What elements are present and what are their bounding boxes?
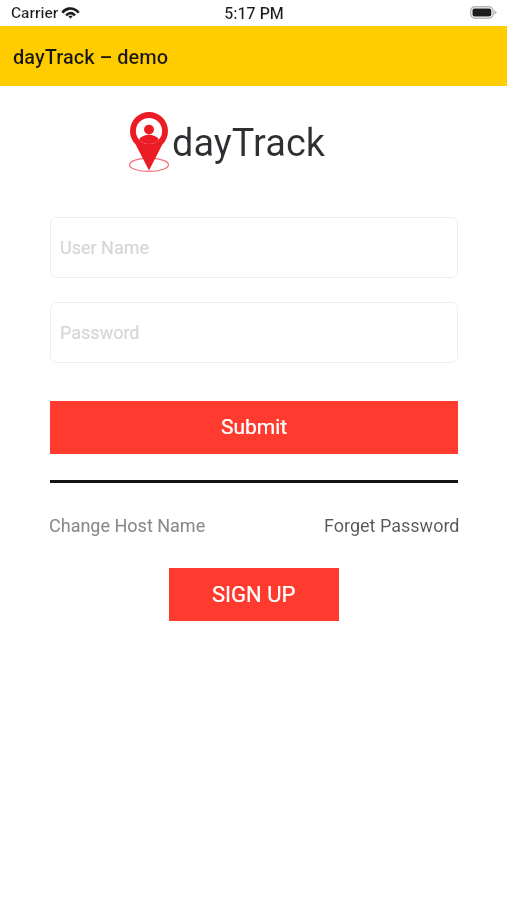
button[interactable]: Forget Password	[324, 515, 460, 536]
staticText: dayTrack	[172, 121, 326, 166]
button[interactable]: Password	[50, 302, 458, 363]
staticText: SIGN UP	[212, 582, 296, 608]
staticText: Submit	[221, 415, 288, 440]
staticText: dayTrack – demo	[13, 45, 169, 68]
staticText: Change Host Name	[49, 515, 206, 536]
staticText: Password	[60, 322, 140, 343]
button[interactable]: Change Host Name	[49, 515, 206, 536]
other: dayTrack location pin logo	[130, 112, 168, 172]
other: Wi-Fi signal	[61, 5, 80, 19]
staticText: Carrier	[11, 4, 59, 22]
staticText: User Name	[60, 237, 150, 258]
button[interactable]: User Name	[50, 217, 458, 278]
other: Battery full	[470, 6, 497, 19]
staticText: 5:17 PM	[224, 4, 284, 23]
staticText: Forget Password	[324, 515, 460, 536]
button[interactable]: Submit	[50, 401, 458, 454]
button[interactable]: SIGN UP	[169, 568, 339, 621]
